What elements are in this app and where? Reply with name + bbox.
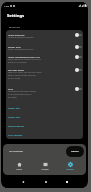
staticText: apps to route through the proxy bbox=[8, 74, 36, 77]
staticText: Settings bbox=[66, 168, 74, 171]
button[interactable]: Home bbox=[9, 158, 29, 175]
staticText: Mux bbox=[8, 87, 14, 90]
staticText: SETTINGS bbox=[9, 26, 20, 29]
button[interactable]: Allow connections from LAN bbox=[6, 54, 83, 67]
staticText: Allow insecure bbox=[8, 33, 25, 36]
staticText: Allow the insecure connection bbox=[8, 36, 34, 39]
button[interactable]: DNS Settings bbox=[6, 130, 83, 139]
staticText: Configs bbox=[41, 168, 49, 171]
staticText: for VPN mode bbox=[8, 77, 21, 80]
staticText: Speed Test bbox=[8, 106, 20, 109]
staticText: Other devices can connect to proxy by bbox=[8, 58, 41, 61]
staticText: DNS Settings bbox=[8, 133, 23, 136]
button[interactable]: Mux bbox=[6, 86, 83, 103]
staticText: using LAN IP and port bbox=[8, 61, 27, 64]
button[interactable]: Settings bbox=[60, 158, 80, 175]
button[interactable]: Allow insecure bbox=[6, 32, 83, 44]
staticText: it can enable when proxy is bbox=[8, 93, 32, 96]
staticText: Not connected bbox=[9, 150, 23, 153]
button[interactable]: Configs bbox=[35, 158, 55, 175]
staticText: not stable bbox=[8, 96, 17, 99]
other: Back bbox=[21, 180, 25, 184]
staticText: Allow connections from LAN bbox=[8, 55, 41, 58]
staticText: Settings bbox=[7, 13, 25, 19]
staticText: Home bbox=[16, 168, 22, 171]
button[interactable]: Connect bbox=[66, 146, 84, 157]
button[interactable]: Per-app proxy bbox=[6, 67, 83, 86]
staticText: Prefer IPv6 address over IPv4 bbox=[8, 48, 34, 51]
staticText: Multiplexing. Can reduce latency, bbox=[8, 90, 37, 93]
button[interactable]: Prefer IPv6 bbox=[6, 44, 83, 54]
button[interactable]: Show Logs bbox=[6, 112, 83, 121]
staticText: Route Settings bbox=[8, 124, 25, 127]
staticText: 1:24 bbox=[4, 4, 9, 7]
button[interactable]: Route Settings bbox=[6, 121, 83, 130]
button[interactable]: Speed Test bbox=[6, 103, 83, 112]
staticText: Select VPN mode, then you can choose bbox=[8, 71, 42, 74]
staticText: Prefer IPv6 bbox=[8, 45, 21, 48]
staticText: Connect bbox=[71, 150, 79, 153]
staticText: Per-app proxy bbox=[8, 68, 25, 71]
staticText: Show Logs bbox=[8, 115, 20, 118]
